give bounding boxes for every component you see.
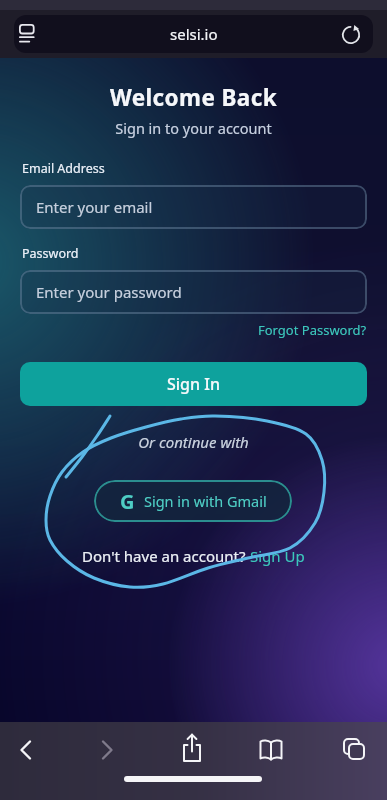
staticText: Don't have an account? bbox=[82, 546, 250, 566]
button[interactable] bbox=[174, 730, 210, 770]
staticText: Welcome Back bbox=[0, 82, 387, 113]
button[interactable] bbox=[8, 733, 44, 767]
button[interactable] bbox=[336, 732, 372, 768]
button[interactable]: selsi.io bbox=[14, 15, 373, 53]
button[interactable]: Sign In bbox=[20, 362, 367, 406]
staticText: Enter your email bbox=[36, 197, 153, 217]
button[interactable]: Forgot Password? bbox=[258, 321, 367, 339]
staticText: Or continue with bbox=[0, 432, 387, 452]
staticText: Sign In bbox=[167, 373, 220, 395]
staticText: Sign in to your account bbox=[0, 118, 387, 138]
button[interactable]: Enter your password bbox=[20, 270, 367, 314]
button[interactable]: G bbox=[94, 480, 292, 522]
button[interactable] bbox=[253, 732, 289, 768]
button[interactable] bbox=[89, 733, 125, 767]
button[interactable]: Enter your email bbox=[20, 185, 367, 229]
staticText: G bbox=[120, 488, 135, 515]
staticText: Email Address bbox=[22, 160, 105, 177]
staticText: selsi.io bbox=[170, 24, 218, 44]
button[interactable]: Sign Up bbox=[250, 546, 305, 566]
staticText: Sign in with Gmail bbox=[144, 491, 267, 511]
staticText: Password bbox=[22, 245, 79, 262]
staticText: Enter your password bbox=[36, 282, 182, 302]
